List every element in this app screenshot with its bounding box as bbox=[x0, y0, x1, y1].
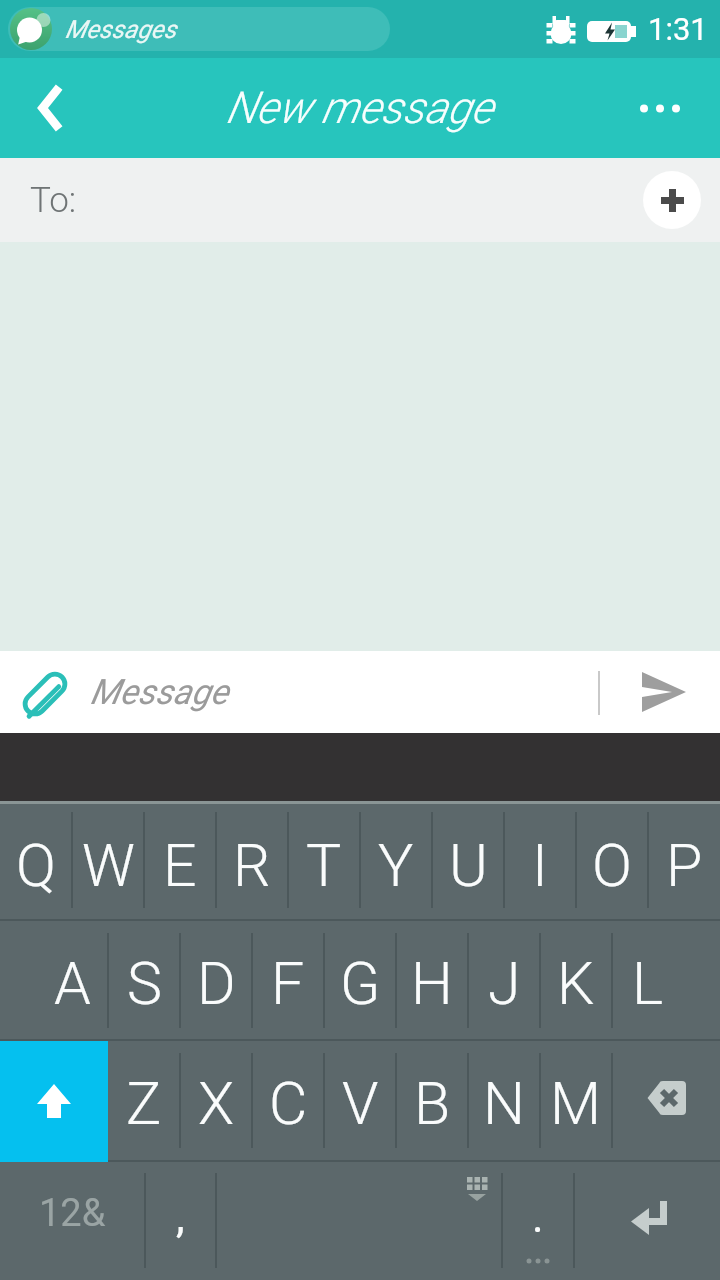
button[interactable] bbox=[0, 651, 90, 733]
button[interactable]: C bbox=[252, 1040, 324, 1161]
staticText: F bbox=[271, 949, 305, 1018]
button[interactable] bbox=[216, 1161, 502, 1280]
staticText: Q bbox=[16, 831, 56, 900]
button[interactable]: L bbox=[612, 920, 684, 1040]
staticText: I bbox=[532, 831, 548, 900]
button[interactable]: F bbox=[252, 920, 324, 1040]
staticText: A bbox=[54, 949, 91, 1018]
staticText: G bbox=[340, 949, 381, 1018]
staticText: U bbox=[449, 831, 488, 900]
staticText: N bbox=[483, 1069, 525, 1138]
staticText: C bbox=[269, 1069, 308, 1138]
button[interactable]: M bbox=[540, 1040, 612, 1161]
button[interactable]: S bbox=[108, 920, 180, 1040]
staticText: S bbox=[127, 949, 162, 1018]
button[interactable]: Q bbox=[0, 804, 72, 920]
staticText: O bbox=[592, 831, 632, 900]
staticText: To: bbox=[30, 180, 77, 221]
staticText: New message bbox=[226, 82, 494, 134]
button[interactable]: G bbox=[324, 920, 396, 1040]
button[interactable]: N bbox=[468, 1040, 540, 1161]
staticText: . bbox=[532, 1191, 544, 1243]
button[interactable]: Z bbox=[108, 1040, 180, 1161]
button[interactable] bbox=[620, 651, 720, 733]
button[interactable]: D bbox=[180, 920, 252, 1040]
button[interactable]: B bbox=[396, 1040, 468, 1161]
staticText: V bbox=[342, 1069, 379, 1138]
button[interactable]: K bbox=[540, 920, 612, 1040]
staticText: , bbox=[176, 1191, 185, 1243]
button[interactable]: 12& bbox=[0, 1161, 145, 1280]
button[interactable]: U bbox=[432, 804, 504, 920]
staticText: Z bbox=[126, 1069, 162, 1138]
staticText: B bbox=[414, 1069, 451, 1138]
staticText: D bbox=[197, 949, 236, 1018]
staticText: M bbox=[550, 1069, 602, 1138]
button[interactable]: J bbox=[468, 920, 540, 1040]
staticText: 12& bbox=[39, 1191, 106, 1236]
button[interactable]: O bbox=[576, 804, 648, 920]
staticText: K bbox=[557, 949, 595, 1018]
button[interactable]: Messages bbox=[8, 7, 390, 51]
staticText: 1:31 bbox=[648, 11, 708, 47]
button[interactable]: T bbox=[288, 804, 360, 920]
button[interactable]: To: bbox=[0, 158, 720, 242]
staticText: Y bbox=[378, 831, 414, 900]
button[interactable]: I bbox=[504, 804, 576, 920]
button[interactable] bbox=[0, 58, 100, 158]
button[interactable]: A bbox=[36, 920, 108, 1040]
button[interactable]: H bbox=[396, 920, 468, 1040]
button[interactable] bbox=[574, 1161, 720, 1280]
staticText: Message bbox=[90, 672, 229, 713]
staticText: P bbox=[666, 831, 703, 900]
button[interactable]: Y bbox=[360, 804, 432, 920]
button[interactable]: R bbox=[216, 804, 288, 920]
staticText: Messages bbox=[65, 15, 177, 44]
staticText: E bbox=[163, 831, 197, 900]
button[interactable]: E bbox=[144, 804, 216, 920]
staticText: H bbox=[411, 949, 453, 1018]
button[interactable] bbox=[643, 171, 701, 229]
staticText: W bbox=[82, 831, 135, 900]
button[interactable] bbox=[612, 1040, 720, 1161]
button[interactable]: P bbox=[648, 804, 720, 920]
button[interactable]: V bbox=[324, 1040, 396, 1161]
button[interactable]: X bbox=[180, 1040, 252, 1161]
button[interactable]: , bbox=[145, 1161, 216, 1280]
staticText: R bbox=[233, 831, 271, 900]
button[interactable]: . bbox=[502, 1161, 574, 1280]
staticText: T bbox=[306, 831, 342, 900]
button[interactable] bbox=[618, 58, 702, 158]
button[interactable]: W bbox=[72, 804, 144, 920]
staticText: J bbox=[488, 949, 521, 1018]
button[interactable] bbox=[0, 1040, 108, 1161]
staticText: L bbox=[632, 949, 664, 1018]
staticText: X bbox=[198, 1069, 235, 1138]
